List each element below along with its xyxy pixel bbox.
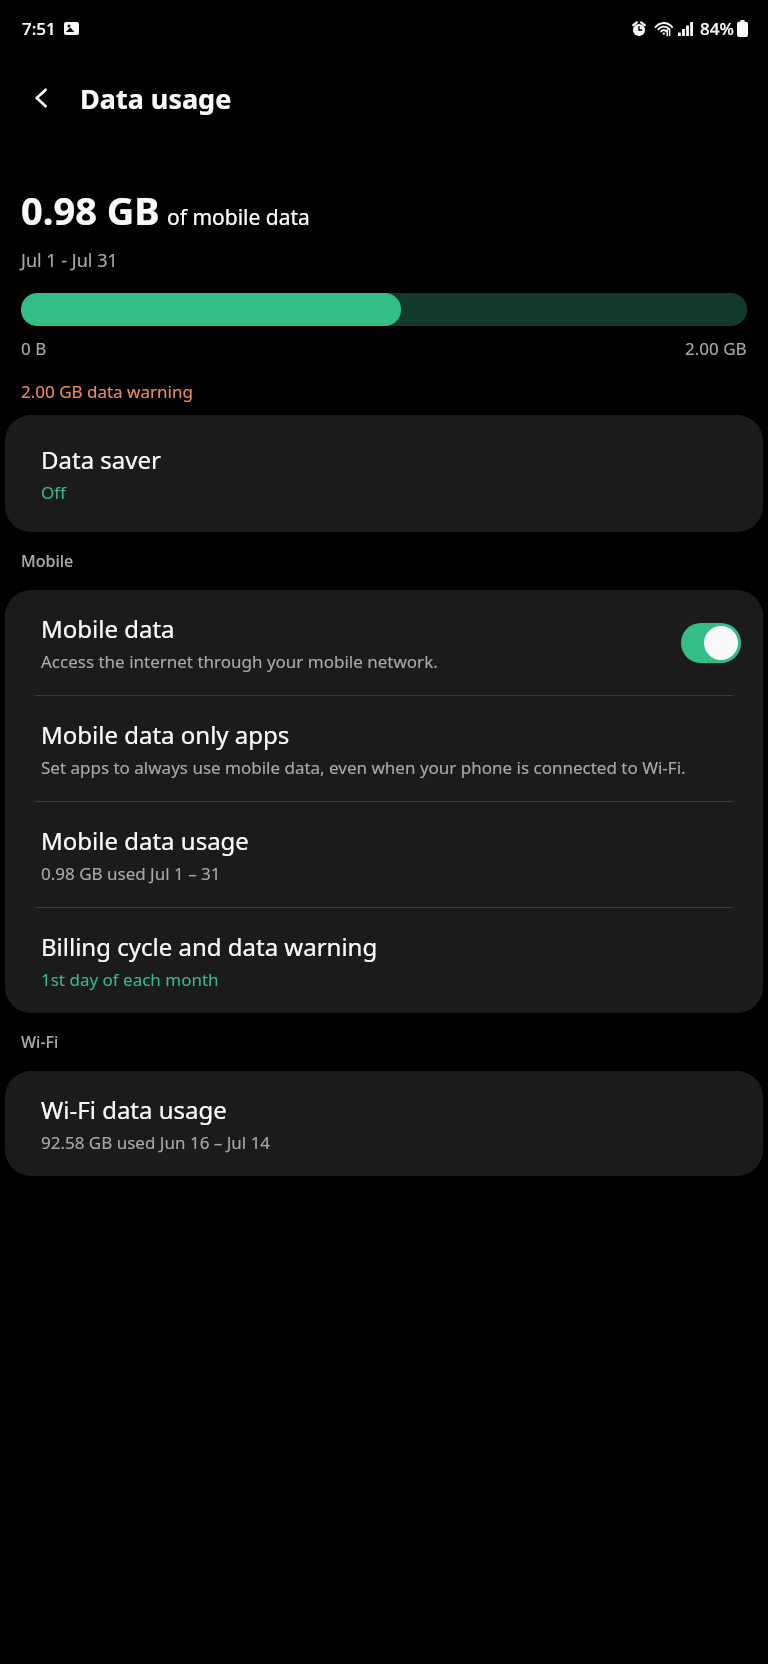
staticText: Off (41, 481, 66, 504)
staticText: 2.00 GB (685, 337, 747, 360)
staticText: 7:51 (22, 17, 56, 40)
staticText: of mobile data (167, 203, 310, 232)
staticText: 0.98 GB (21, 184, 160, 236)
staticText: Jul 1 - Jul 31 (21, 248, 118, 273)
staticText: Mobile data usage (41, 824, 249, 857)
button[interactable]: Mobile data usage (5, 802, 763, 907)
staticText: 0.98 GB used Jul 1 – 31 (41, 862, 221, 885)
staticText: Mobile data only apps (41, 718, 290, 751)
staticText: Billing cycle and data warning (41, 930, 378, 963)
staticText: Set apps to always use mobile data, even… (41, 756, 686, 779)
staticText: 2.00 GB data warning (21, 380, 193, 403)
button[interactable]: Back (18, 74, 66, 122)
staticText: Access the internet through your mobile … (41, 650, 438, 673)
staticText: Data usage (80, 80, 232, 117)
button[interactable]: Billing cycle and data warning (5, 908, 763, 1013)
staticText: 1st day of each month (41, 968, 219, 991)
staticText: 0 B (21, 337, 47, 360)
button[interactable]: Mobile data (5, 590, 763, 695)
staticText: Wi-Fi data usage (41, 1093, 227, 1126)
staticText: Wi-Fi (21, 1031, 59, 1053)
button[interactable]: Mobile data toggle, on (681, 623, 741, 663)
staticText: Mobile (21, 550, 74, 572)
staticText: 84% (700, 17, 734, 40)
staticText: Mobile data (41, 612, 175, 645)
staticText: 92.58 GB used Jun 16 – Jul 14 (41, 1131, 271, 1154)
button[interactable]: Data saver (5, 415, 763, 532)
staticText: Data saver (41, 443, 161, 476)
button[interactable]: Mobile data only apps (5, 696, 763, 801)
button[interactable]: Wi-Fi data usage (5, 1071, 763, 1176)
